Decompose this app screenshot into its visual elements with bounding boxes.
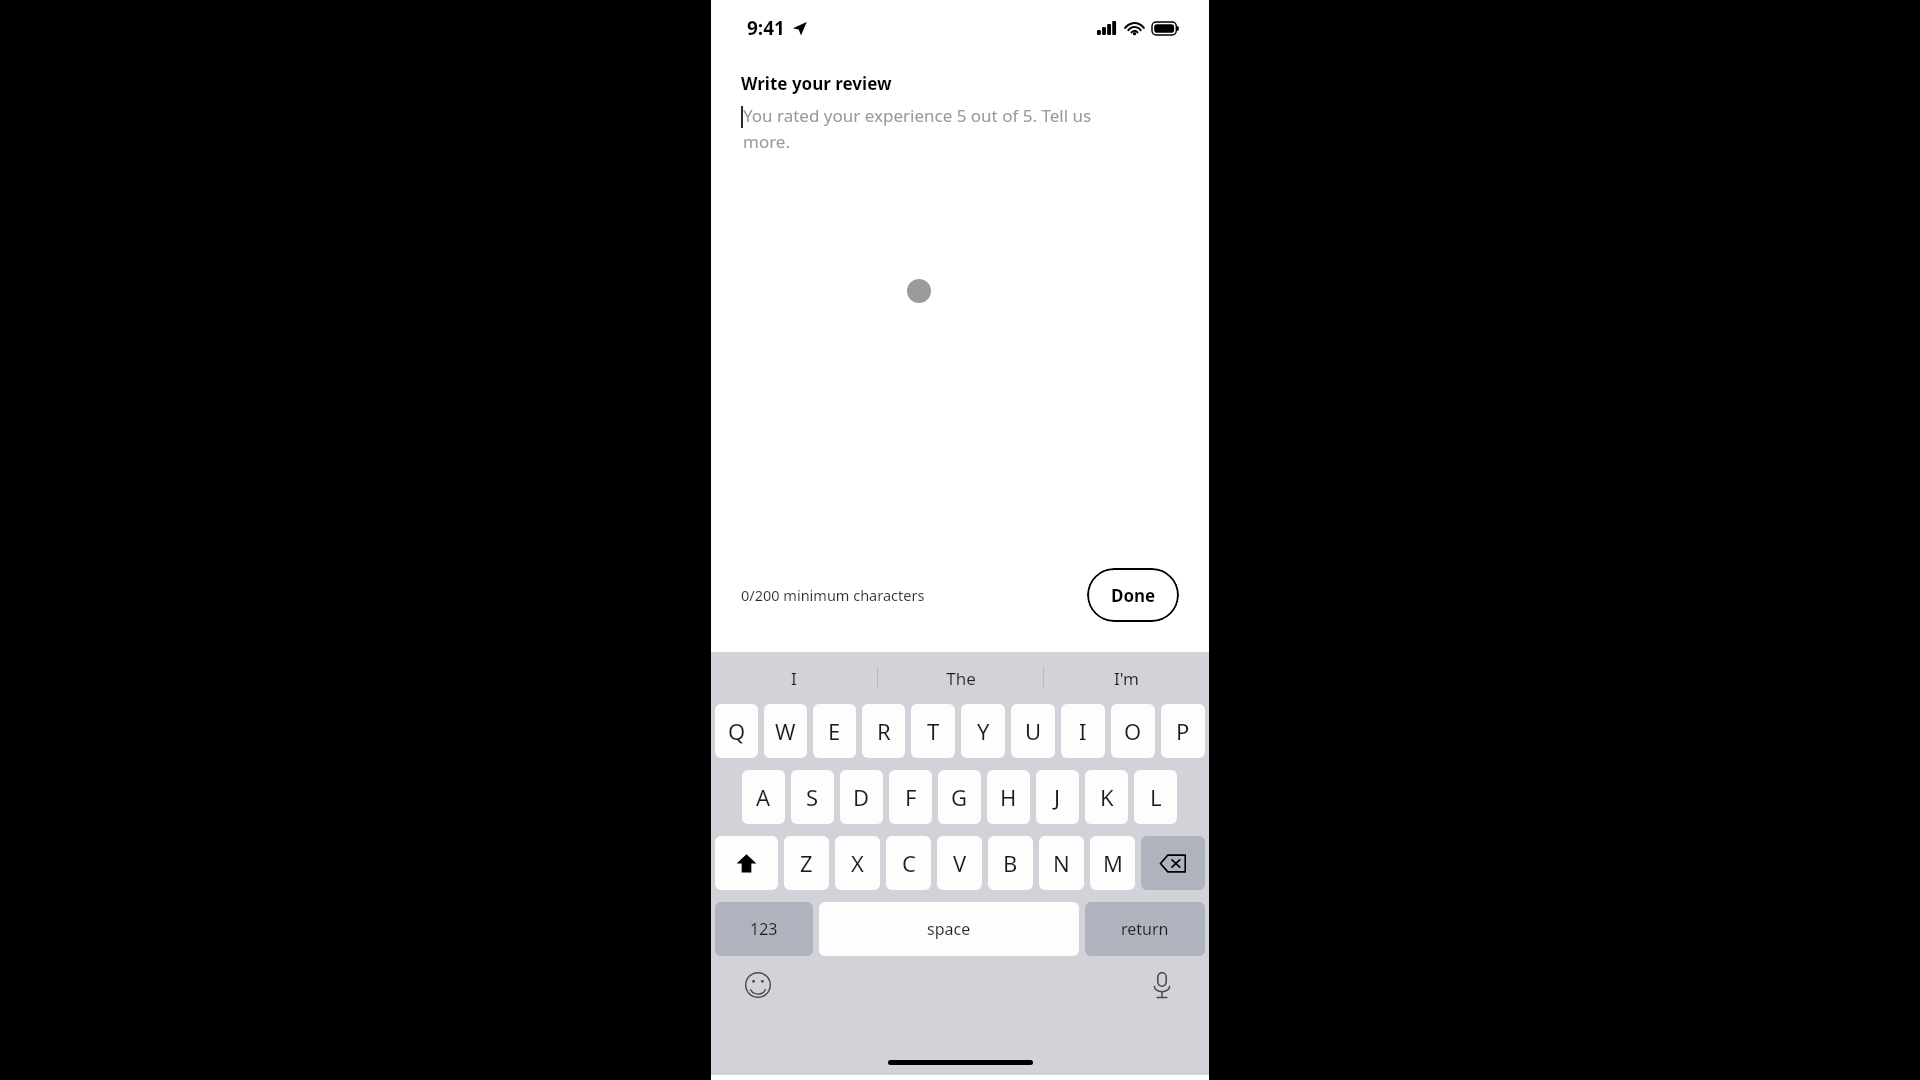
button[interactable]: A xyxy=(742,770,785,824)
button[interactable]: I'm xyxy=(1044,652,1209,704)
button[interactable]: 123 xyxy=(715,902,813,956)
staticText: return xyxy=(1121,918,1169,940)
staticText: Q xyxy=(728,716,746,746)
button[interactable]: Dictation xyxy=(1145,968,1179,1002)
staticText: H xyxy=(1000,782,1017,812)
staticText: R xyxy=(877,716,891,746)
button[interactable]: Y xyxy=(961,704,1005,758)
button[interactable]: I xyxy=(1061,704,1105,758)
staticText: I xyxy=(791,667,797,690)
button[interactable]: W xyxy=(764,704,807,758)
button[interactable]: M xyxy=(1090,836,1135,890)
staticText: K xyxy=(1100,782,1114,812)
button[interactable]: B xyxy=(988,836,1033,890)
button[interactable]: J xyxy=(1036,770,1079,824)
button[interactable]: I xyxy=(711,652,877,704)
button[interactable]: D xyxy=(840,770,883,824)
staticText: S xyxy=(806,782,819,812)
staticText: Done xyxy=(1111,584,1156,607)
button[interactable]: V xyxy=(937,836,982,890)
button[interactable]: Z xyxy=(784,836,829,890)
button[interactable]: O xyxy=(1111,704,1155,758)
button[interactable]: S xyxy=(791,770,834,824)
button[interactable]: Emoji xyxy=(741,968,775,1002)
staticText: M xyxy=(1103,848,1123,878)
staticText: E xyxy=(828,716,841,746)
staticText: N xyxy=(1053,848,1070,878)
staticText: 0/200 minimum characters xyxy=(741,585,925,605)
button[interactable]: Backspace xyxy=(1141,836,1205,890)
staticText: Z xyxy=(800,848,813,878)
button[interactable]: return xyxy=(1085,902,1205,956)
button[interactable]: T xyxy=(911,704,955,758)
button[interactable]: Shift xyxy=(715,836,778,890)
staticText: C xyxy=(902,848,916,878)
button[interactable]: X xyxy=(835,836,880,890)
staticText: J xyxy=(1054,782,1061,812)
staticText: P xyxy=(1176,716,1190,746)
staticText: 123 xyxy=(750,918,778,940)
button[interactable]: The xyxy=(878,652,1043,704)
button[interactable]: C xyxy=(886,836,931,890)
staticText: I xyxy=(1079,716,1087,746)
staticText: U xyxy=(1025,716,1042,746)
staticText: L xyxy=(1150,782,1162,812)
button[interactable]: E xyxy=(813,704,856,758)
staticText: 9:41 xyxy=(747,15,785,41)
staticText: W xyxy=(775,716,796,746)
staticText: X xyxy=(851,848,864,878)
button[interactable]: H xyxy=(987,770,1030,824)
staticText: A xyxy=(756,782,771,812)
staticText: F xyxy=(905,782,917,812)
button[interactable]: Q xyxy=(715,704,758,758)
staticText: T xyxy=(927,716,940,746)
button[interactable]: K xyxy=(1085,770,1128,824)
button[interactable]: Done xyxy=(1087,568,1179,622)
staticText: O xyxy=(1124,716,1142,746)
staticText: Y xyxy=(977,716,990,746)
button[interactable]: G xyxy=(938,770,981,824)
button[interactable]: R xyxy=(862,704,905,758)
staticText: G xyxy=(951,782,968,812)
staticText: B xyxy=(1003,848,1018,878)
staticText: Write your review xyxy=(741,72,892,95)
button[interactable]: space xyxy=(819,902,1079,956)
staticText: The xyxy=(946,667,976,690)
button[interactable]: P xyxy=(1161,704,1205,758)
button[interactable]: U xyxy=(1011,704,1055,758)
staticText: space xyxy=(927,918,971,940)
staticText: D xyxy=(853,782,870,812)
button[interactable]: L xyxy=(1134,770,1177,824)
staticText: You rated your experience 5 out of 5. Te… xyxy=(743,104,1123,153)
button[interactable]: F xyxy=(889,770,932,824)
staticText: V xyxy=(953,848,967,878)
staticText: I'm xyxy=(1114,667,1139,690)
button[interactable]: N xyxy=(1039,836,1084,890)
